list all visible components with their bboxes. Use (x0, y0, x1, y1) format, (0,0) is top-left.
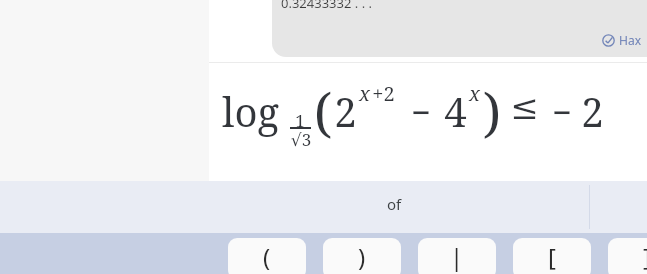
button[interactable]: ) (323, 238, 401, 274)
staticText: ) (358, 240, 366, 273)
staticText: [ (548, 240, 556, 273)
staticText: ] (643, 240, 647, 273)
staticText: log (222, 84, 279, 138)
button[interactable]: ( (228, 238, 306, 274)
staticText: Нax (619, 32, 641, 48)
button[interactable]: | (418, 238, 496, 274)
staticText: − (411, 89, 431, 135)
staticText: 1 (292, 109, 308, 132)
staticText: ≤ (510, 87, 539, 127)
staticText: 2 (334, 84, 357, 138)
staticText: x (469, 80, 480, 107)
staticText: ( (314, 76, 332, 147)
staticText: − (552, 89, 572, 135)
staticText: 0.32433332 . . . (281, 0, 373, 12)
staticText: 4 (444, 84, 467, 138)
button[interactable]: ] (608, 238, 647, 274)
staticText: √3 (289, 128, 313, 151)
staticText: +2 (372, 80, 395, 107)
staticText: x (359, 80, 370, 107)
staticText: ( (263, 240, 271, 273)
staticText: 2 (581, 84, 604, 138)
button[interactable]: of (200, 181, 589, 233)
button[interactable]: Нашли ошибку (600, 30, 643, 50)
staticText: | (450, 240, 464, 273)
staticText: ) (483, 76, 501, 147)
staticText: of (387, 194, 402, 214)
button[interactable]: [ (513, 238, 591, 274)
